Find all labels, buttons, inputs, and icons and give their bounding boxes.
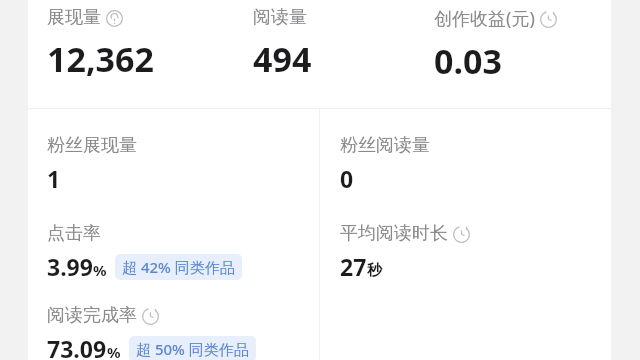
staticText: 创作收益(元) [434, 6, 535, 31]
staticText: 粉丝展现量 [47, 134, 137, 157]
button[interactable]: 平均阅读时长 [340, 222, 470, 282]
button[interactable]: 点击率 [47, 222, 242, 282]
staticText: 展现量 [47, 6, 101, 29]
other: 更新时间 [453, 226, 470, 243]
staticText: 0.03 [434, 38, 502, 84]
button[interactable]: 粉丝展现量 [47, 134, 137, 194]
staticText: % [107, 342, 121, 360]
staticText: 73.09 [47, 333, 107, 360]
other: 说明 [106, 10, 123, 27]
button[interactable]: 阅读量 [253, 6, 312, 82]
staticText: 粉丝阅读量 [340, 134, 430, 157]
staticText: 平均阅读时长 [340, 222, 448, 245]
button[interactable]: 阅读完成率 [47, 304, 256, 360]
button[interactable]: 展现量 [47, 6, 154, 82]
button[interactable]: 超 50% 同类作品 [129, 336, 256, 360]
other: 更新时间 [540, 11, 557, 28]
staticText: 秒 [367, 261, 382, 280]
button[interactable]: 创作收益(元) [434, 6, 557, 84]
button[interactable]: 粉丝阅读量 [340, 134, 430, 194]
other: 更新时间 [142, 308, 159, 325]
staticText: 阅读完成率 [47, 304, 137, 327]
staticText: 494 [253, 36, 312, 82]
button[interactable]: 超 42% 同类作品 [115, 254, 242, 280]
staticText: 点击率 [47, 222, 101, 245]
staticText: 12,362 [47, 36, 154, 82]
staticText: 3.99 [47, 251, 93, 282]
staticText: 1 [47, 163, 61, 194]
staticText: 阅读量 [253, 6, 307, 29]
staticText: 0 [340, 163, 354, 194]
staticText: 超 42% 同类作品 [122, 257, 235, 277]
staticText: % [93, 260, 107, 280]
staticText: 27 [340, 251, 367, 282]
staticText: 超 50% 同类作品 [136, 339, 249, 359]
